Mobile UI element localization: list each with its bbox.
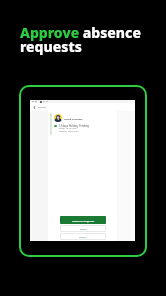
- staticText: Approve absence requests: [20, 23, 158, 56]
- staticText: Cancel: [79, 235, 87, 238]
- button[interactable]: Reject: [60, 225, 106, 232]
- button[interactable]: Back: [33, 106, 36, 109]
- button[interactable]: APPROVE REQUEST: [60, 216, 106, 224]
- staticText: Absence: [38, 106, 47, 109]
- staticText: APPROVE REQUEST: [72, 219, 95, 222]
- staticText: 12 days Holiday, Pending: [59, 124, 89, 127]
- staticText: Reject: [80, 227, 87, 230]
- staticText: Friday, 15 Jan 2021 Monday, 25 Jan 2021: [59, 127, 79, 133]
- staticText: Name Surname: [64, 117, 83, 120]
- button[interactable]: Cancel: [60, 233, 106, 240]
- button[interactable]: Name Surname: [49, 113, 116, 135]
